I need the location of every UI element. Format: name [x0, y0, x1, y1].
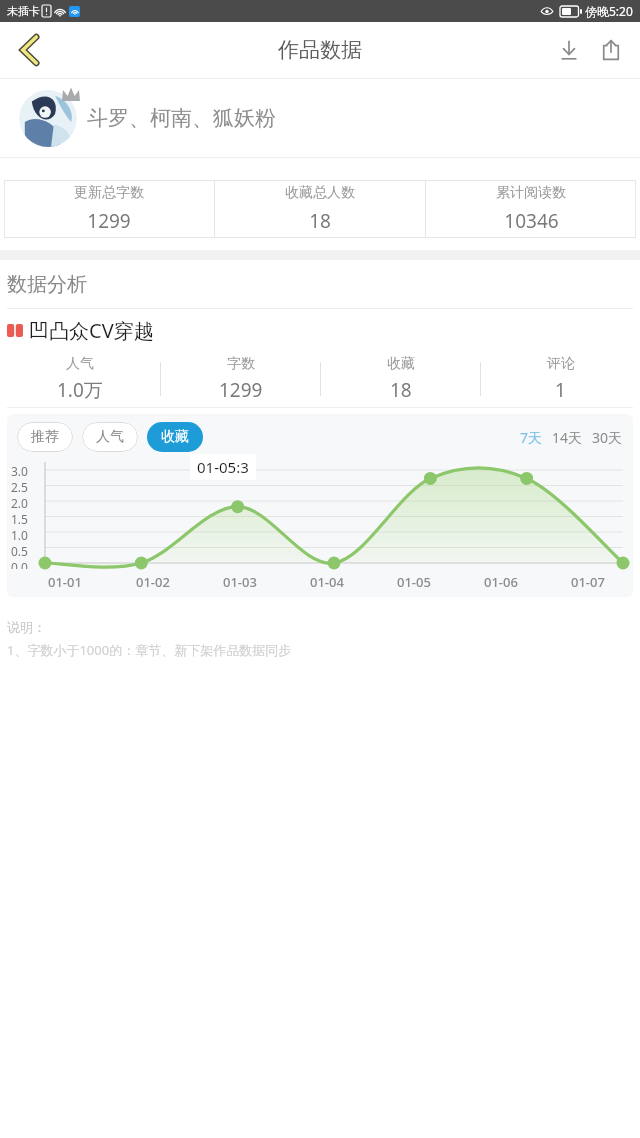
staticText: 作品数据 [278, 37, 362, 63]
staticText: 人气 [96, 428, 124, 446]
staticText: 01-05:3 [197, 457, 249, 477]
staticText: 1299 [87, 208, 131, 234]
button[interactable]: Back [6, 26, 54, 74]
staticText: 斗罗、柯南、狐妖粉 [87, 105, 276, 131]
staticText: 推荐 [31, 428, 59, 446]
button[interactable]: 7天 [520, 428, 543, 447]
staticText: 累计阅读数 [496, 184, 566, 202]
staticText: 10346 [504, 208, 559, 234]
button[interactable]: 字数 [161, 355, 320, 403]
staticText: 01-07 [571, 573, 605, 591]
staticText: 2.0 [11, 495, 28, 511]
button[interactable]: 14天 [552, 428, 583, 447]
staticText: 凹凸众CV穿越 [29, 317, 154, 344]
staticText: 01-01 [48, 573, 82, 591]
staticText: 0.5 [11, 543, 28, 559]
staticText: 字数 [227, 355, 255, 373]
staticText: 更新总字数 [74, 184, 144, 202]
staticText: 未插卡 [7, 4, 40, 18]
staticText: 傍晚5:20 [585, 3, 633, 19]
staticText: 1.0万 [57, 377, 103, 403]
staticText: 18 [390, 377, 412, 403]
staticText: 评论 [547, 355, 575, 373]
staticText: 2.5 [11, 479, 28, 495]
button[interactable]: Download [548, 29, 590, 71]
staticText: 数据分析 [7, 272, 87, 297]
staticText: 01-02 [136, 573, 170, 591]
staticText: 0.0 [11, 559, 28, 569]
staticText: 1.5 [11, 511, 28, 527]
button[interactable]: 推荐 [17, 422, 73, 452]
staticText: 01-04 [310, 573, 344, 591]
button[interactable]: 收藏 [321, 355, 480, 403]
staticText: 18 [309, 208, 331, 234]
button[interactable]: 凹凸众CV穿越 [7, 309, 640, 351]
staticText: 1 [555, 377, 566, 403]
staticText: 01-06 [484, 573, 518, 591]
button[interactable]: 人气 [82, 422, 138, 452]
staticText: 1、字数小于1000的：章节、新下架作品数据同步 [7, 641, 292, 659]
staticText: 1.0 [11, 527, 28, 543]
staticText: 说明： [7, 619, 46, 635]
staticText: 01-03 [223, 573, 257, 591]
button[interactable]: Share [590, 29, 632, 71]
staticText: 收藏 [161, 428, 189, 446]
button[interactable]: 更新总字数 [4, 180, 214, 238]
staticText: 3.0 [11, 463, 28, 479]
staticText: 人气 [66, 355, 94, 373]
button[interactable]: 收藏 [147, 422, 203, 452]
button[interactable]: 人气 [0, 355, 160, 403]
button[interactable]: 评论 [481, 355, 640, 403]
button[interactable]: 斗罗、柯南、狐妖粉 [0, 79, 640, 157]
button[interactable]: 累计阅读数 [426, 180, 636, 238]
button[interactable]: 收藏总人数 [215, 180, 425, 238]
button[interactable]: 30天 [592, 428, 623, 447]
staticText: 收藏 [387, 355, 415, 373]
staticText: 收藏总人数 [285, 184, 355, 202]
staticText: 1299 [219, 377, 263, 403]
staticText: 01-05 [397, 573, 431, 591]
